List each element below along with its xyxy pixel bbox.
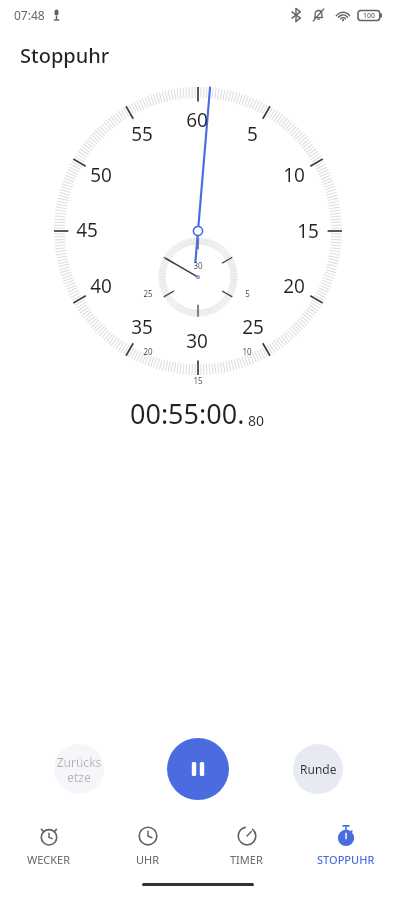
staticText: 60 bbox=[186, 107, 208, 133]
staticText: TIMER bbox=[230, 852, 263, 867]
staticText: 5 bbox=[247, 121, 258, 147]
staticText: 07:48 bbox=[14, 7, 45, 23]
button[interactable]: STOPPUHR bbox=[296, 819, 395, 873]
button[interactable]: TIMER bbox=[197, 819, 296, 873]
staticText: 20 bbox=[143, 346, 153, 357]
staticText: 5 bbox=[245, 288, 250, 299]
staticText: 25 bbox=[242, 314, 264, 340]
staticText: 20 bbox=[283, 273, 305, 299]
staticText: 10 bbox=[283, 162, 305, 188]
staticText: UHR bbox=[136, 852, 160, 867]
staticText: WECKER bbox=[27, 852, 71, 867]
staticText: 55 bbox=[131, 121, 153, 147]
staticText: 35 bbox=[131, 314, 153, 340]
staticText: 45 bbox=[76, 217, 98, 243]
staticText: 40 bbox=[90, 273, 112, 299]
staticText: 50 bbox=[90, 162, 112, 188]
button[interactable]: Pause bbox=[167, 738, 229, 800]
button[interactable]: UHR bbox=[98, 819, 197, 873]
button[interactable]: WECKER bbox=[0, 819, 98, 873]
staticText: 30 bbox=[193, 260, 203, 271]
staticText: 15 bbox=[193, 375, 203, 386]
staticText: 15 bbox=[297, 218, 319, 244]
staticText: 10 bbox=[242, 346, 252, 357]
staticText: STOPPUHR bbox=[317, 852, 375, 867]
staticText: 30 bbox=[186, 328, 208, 354]
button[interactable]: Zurücksetze bbox=[54, 744, 104, 794]
button[interactable]: Runde bbox=[293, 744, 343, 794]
staticText: 25 bbox=[143, 288, 153, 299]
staticText: Stoppuhr bbox=[20, 42, 110, 69]
staticText: 00:55:00. bbox=[130, 395, 245, 432]
staticText: Zurücksetze bbox=[54, 754, 104, 785]
staticText: Runde bbox=[300, 761, 337, 777]
staticText: 100 bbox=[363, 11, 376, 21]
staticText: 80 bbox=[248, 411, 265, 430]
